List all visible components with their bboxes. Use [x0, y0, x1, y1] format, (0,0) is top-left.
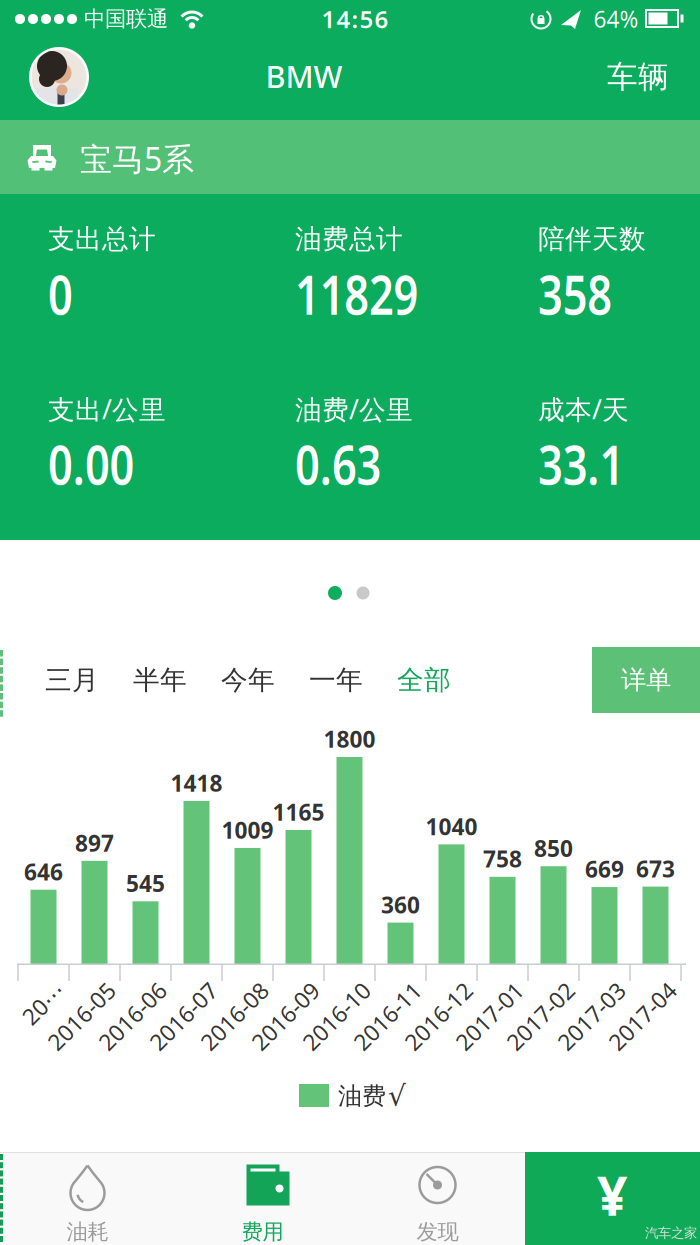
- button[interactable]: ¥: [525, 1152, 700, 1245]
- staticText: 油耗: [66, 1219, 108, 1245]
- button[interactable]: 一年: [294, 652, 378, 708]
- staticText: 全部: [397, 664, 451, 696]
- button[interactable]: 今年: [206, 652, 290, 708]
- staticText: 14:56: [321, 3, 388, 35]
- staticText: 油费: [338, 1081, 386, 1111]
- staticText: 车辆: [607, 58, 669, 96]
- staticText: 11829: [295, 261, 435, 327]
- staticText: 20⋯: [11, 971, 60, 1001]
- staticText: 油费/公里: [295, 391, 413, 427]
- staticText: 2017-02: [485, 971, 570, 1001]
- staticText: 2016-10: [281, 971, 366, 1001]
- staticText: 油费总计: [295, 223, 403, 255]
- staticText: 545: [126, 868, 165, 898]
- staticText: 2017-01: [434, 971, 519, 1001]
- staticText: 64%: [593, 4, 638, 34]
- staticText: 支出总计: [48, 223, 156, 255]
- staticText: √: [388, 1080, 406, 1112]
- staticText: 费用: [241, 1219, 283, 1245]
- staticText: ¥: [597, 1160, 628, 1230]
- staticText: 详单: [621, 664, 671, 695]
- staticText: 2016-07: [128, 971, 213, 1001]
- staticText: 2016-05: [26, 971, 111, 1001]
- staticText: 758: [483, 844, 522, 874]
- staticText: 358: [538, 261, 622, 327]
- staticText: 0.63: [295, 431, 393, 497]
- staticText: 2016-12: [383, 971, 468, 1001]
- staticText: 1040: [425, 811, 477, 841]
- staticText: 360: [381, 889, 420, 920]
- staticText: 2017-04: [587, 971, 672, 1001]
- staticText: 一年: [309, 664, 363, 696]
- staticText: 0.00: [48, 431, 146, 497]
- button[interactable]: 发现: [350, 1152, 525, 1244]
- staticText: 中国联通: [84, 6, 168, 32]
- staticText: 673: [636, 854, 675, 884]
- staticText: 1009: [221, 815, 273, 845]
- button[interactable]: 全部: [382, 652, 466, 708]
- staticText: 半年: [133, 664, 187, 696]
- staticText: 669: [585, 854, 624, 884]
- staticText: 1165: [272, 797, 324, 827]
- staticText: 0: [48, 261, 76, 327]
- staticText: BMW: [265, 56, 342, 96]
- staticText: 646: [24, 857, 63, 887]
- staticText: 850: [534, 833, 573, 863]
- staticText: 1800: [323, 724, 375, 754]
- staticText: 成本/天: [538, 391, 629, 427]
- staticText: 陪伴天数: [538, 223, 646, 255]
- staticText: 2017-03: [536, 971, 621, 1001]
- button[interactable]: 费用: [175, 1152, 350, 1244]
- button[interactable]: [28, 46, 90, 108]
- button[interactable]: 半年: [118, 652, 202, 708]
- button[interactable]: 三月: [30, 652, 114, 708]
- staticText: 2016-09: [230, 971, 315, 1001]
- staticText: 支出/公里: [48, 391, 166, 427]
- staticText: 发现: [416, 1219, 458, 1245]
- button[interactable]: 宝马5系: [0, 120, 700, 194]
- staticText: 2016-11: [332, 971, 417, 1001]
- staticText: 1418: [170, 768, 222, 798]
- staticText: 汽车之家: [645, 1225, 697, 1241]
- button[interactable]: 车辆: [590, 46, 686, 108]
- staticText: 2016-06: [77, 971, 162, 1001]
- staticText: 2016-08: [179, 971, 264, 1001]
- staticText: 三月: [45, 664, 99, 696]
- staticText: 897: [75, 828, 114, 858]
- button[interactable]: 详单: [592, 647, 700, 713]
- staticText: 33.1: [538, 431, 636, 497]
- staticText: 今年: [221, 664, 275, 696]
- staticText: 宝马5系: [80, 137, 194, 180]
- button[interactable]: 油耗: [0, 1152, 175, 1244]
